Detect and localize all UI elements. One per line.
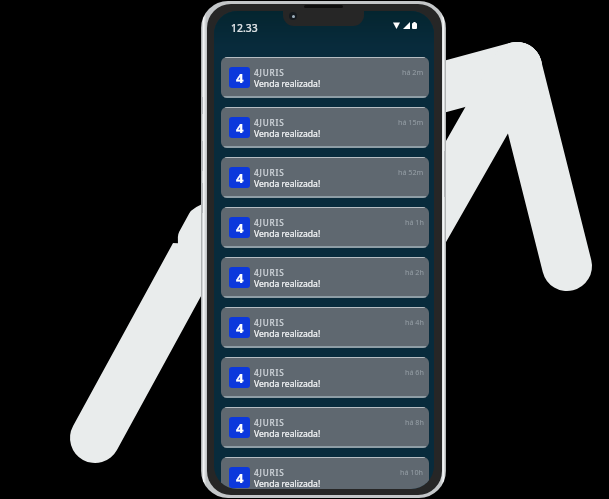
staticText: 4JURIS	[254, 267, 285, 278]
staticText: 4	[236, 169, 244, 187]
staticText: 4	[236, 319, 244, 337]
staticText: há 52m	[398, 167, 424, 177]
staticText: 4	[236, 469, 244, 487]
staticText: 4JURIS	[254, 67, 285, 78]
staticText: há 4h	[405, 317, 424, 327]
staticText: há 6h	[405, 367, 424, 377]
staticText: 4	[236, 419, 244, 437]
button[interactable]: 4	[221, 57, 429, 98]
staticText: há 15m	[398, 117, 424, 127]
button[interactable]: 4	[221, 207, 429, 248]
staticText: Venda realizada!	[254, 278, 321, 290]
staticText: 12.33	[231, 21, 258, 35]
staticText: 4JURIS	[254, 467, 285, 478]
staticText: 4	[236, 369, 244, 387]
staticText: Venda realizada!	[254, 128, 321, 140]
button[interactable]: 4	[221, 107, 429, 148]
button[interactable]: 4	[221, 307, 429, 348]
staticText: Venda realizada!	[254, 228, 321, 240]
staticText: Venda realizada!	[254, 328, 321, 340]
staticText: 4	[236, 119, 244, 137]
staticText: 4	[236, 219, 244, 237]
staticText: há 2h	[405, 267, 424, 277]
button[interactable]: 4	[221, 457, 429, 489]
staticText: 4JURIS	[254, 317, 285, 328]
staticText: 4	[236, 269, 244, 287]
staticText: 4JURIS	[254, 417, 285, 428]
staticText: há 2m	[402, 67, 424, 77]
staticText: 4JURIS	[254, 117, 285, 128]
staticText: Venda realizada!	[254, 428, 321, 440]
staticText: Venda realizada!	[254, 378, 321, 390]
button[interactable]: 4	[221, 357, 429, 398]
staticText: 4JURIS	[254, 167, 285, 178]
staticText: há 8h	[405, 417, 424, 427]
button[interactable]: 4	[221, 407, 429, 448]
staticText: 4JURIS	[254, 217, 285, 228]
staticText: Venda realizada!	[254, 78, 321, 90]
staticText: 4JURIS	[254, 367, 285, 378]
staticText: Venda realizada!	[254, 478, 321, 489]
button[interactable]: 4	[221, 257, 429, 298]
staticText: há 1h	[405, 217, 424, 227]
staticText: há 10h	[400, 467, 424, 477]
staticText: 4	[236, 69, 244, 87]
button[interactable]: 4	[221, 157, 429, 198]
staticText: Venda realizada!	[254, 178, 321, 190]
